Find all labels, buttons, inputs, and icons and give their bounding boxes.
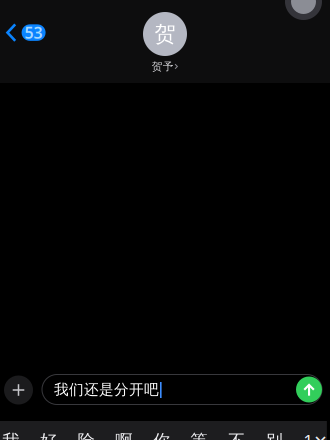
staticText: 1✕ [303, 429, 328, 440]
staticText: 贺予 [152, 60, 174, 73]
staticText: 我 [2, 430, 19, 440]
staticText: 53 [25, 22, 43, 43]
staticText: 不 [228, 430, 245, 440]
staticText: 别 [265, 430, 282, 440]
button[interactable]: 53 [0, 0, 46, 42]
button[interactable]: 等 [190, 421, 220, 437]
staticText: 等 [190, 430, 207, 440]
button[interactable]: 贺 [0, 0, 330, 71]
button[interactable]: 好 [40, 421, 70, 437]
button[interactable]: 我 [2, 421, 32, 437]
staticText: 啊 [115, 430, 132, 440]
button[interactable]: Send [296, 376, 322, 402]
button[interactable]: 不 [228, 421, 258, 437]
button[interactable]: 1✕ [303, 421, 330, 437]
button[interactable]: 啊 [115, 421, 145, 437]
staticText: 贺 [154, 21, 175, 47]
button[interactable]: Add attachment [4, 375, 33, 404]
staticText: 好 [40, 430, 57, 440]
button[interactable]: 别 [265, 421, 295, 437]
button[interactable]: 险 [77, 421, 107, 437]
button[interactable]: 你 [153, 421, 183, 437]
staticText: 险 [77, 430, 94, 440]
staticText: 我们还是分开吧 [54, 380, 159, 398]
staticText: 你 [153, 430, 170, 440]
